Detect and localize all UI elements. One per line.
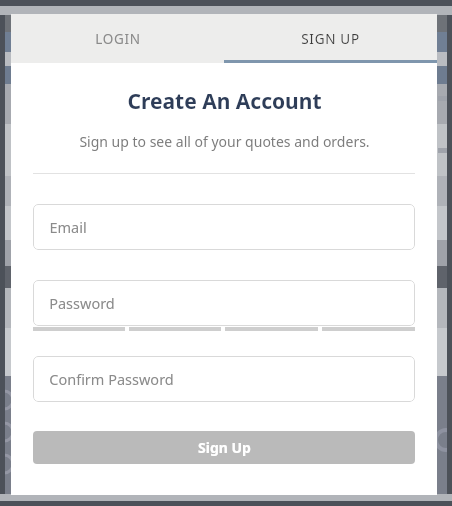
button[interactable]: SIGN UP bbox=[224, 14, 437, 63]
staticText: LOGIN bbox=[95, 30, 141, 48]
staticText: Create An Account bbox=[127, 87, 322, 116]
staticText: Email bbox=[49, 217, 87, 237]
staticText: Sign up to see all of your quotes and or… bbox=[79, 132, 370, 151]
staticText: Confirm Password bbox=[49, 369, 174, 389]
button[interactable]: Email bbox=[33, 204, 415, 250]
staticText: SIGN UP bbox=[301, 30, 360, 48]
button[interactable]: LOGIN bbox=[11, 14, 224, 63]
button[interactable]: Confirm Password bbox=[33, 356, 415, 402]
staticText: Sign Up bbox=[198, 438, 251, 457]
button[interactable]: Password bbox=[33, 280, 415, 326]
staticText: Password bbox=[49, 293, 115, 313]
button[interactable]: Sign Up bbox=[33, 431, 415, 464]
